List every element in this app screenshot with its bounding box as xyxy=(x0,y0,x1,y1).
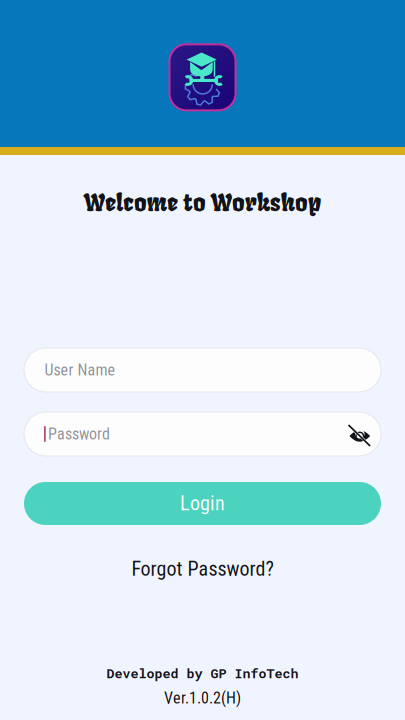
staticText: Login xyxy=(180,492,225,515)
staticText: User Name xyxy=(45,361,116,379)
staticText: Password xyxy=(48,425,110,443)
button[interactable]: Login xyxy=(24,482,381,525)
staticText: Forgot Password? xyxy=(131,557,273,581)
staticText: Welcome to Workshop xyxy=(84,187,321,217)
staticText: Ver.1.0.2(H) xyxy=(164,689,241,707)
button[interactable]: Show password xyxy=(348,422,372,446)
button[interactable]: Forgot Password? xyxy=(131,559,273,579)
staticText: Developed by GP InfoTech xyxy=(106,664,298,682)
